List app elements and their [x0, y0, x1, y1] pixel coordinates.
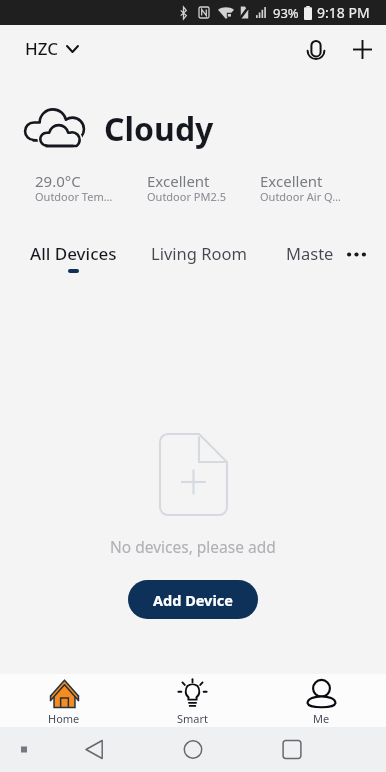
staticText: Excellent	[147, 171, 210, 191]
staticText: All Devices	[30, 242, 117, 265]
staticText: Smart	[177, 711, 209, 726]
staticText: Cloudy	[104, 107, 214, 151]
staticText: No devices, please add	[110, 536, 276, 557]
staticText: Excellent	[260, 171, 323, 191]
button[interactable]: Add Device	[128, 580, 258, 619]
button[interactable]: 29.0°C	[35, 171, 147, 206]
button[interactable]: HZC	[16, 30, 87, 67]
staticText: 29.0°C	[35, 171, 81, 191]
button[interactable]: All Devices	[30, 242, 117, 273]
button[interactable]: Excellent	[147, 171, 260, 206]
button[interactable]: More rooms	[343, 244, 369, 265]
staticText: Outdoor Tem…	[35, 189, 113, 204]
staticText: Outdoor PM2.5	[147, 189, 227, 204]
staticText: Outdoor Air Q…	[260, 189, 341, 204]
button[interactable]: Maste	[286, 242, 334, 264]
button[interactable]: Voice assistant	[299, 33, 333, 67]
button[interactable]: Me	[257, 674, 386, 726]
button[interactable]: Smart	[128, 674, 257, 726]
button[interactable]: Living Room	[151, 242, 247, 264]
button[interactable]: Home	[0, 674, 128, 726]
staticText: HZC	[25, 37, 59, 60]
staticText: Me	[313, 711, 330, 726]
button[interactable]: Excellent	[260, 171, 373, 206]
staticText: Home	[48, 711, 80, 726]
staticText: 93%	[273, 4, 299, 22]
button[interactable]: Add device	[345, 32, 379, 66]
staticText: Add Device	[153, 590, 233, 610]
staticText: 9:18 PM	[317, 3, 370, 22]
